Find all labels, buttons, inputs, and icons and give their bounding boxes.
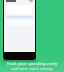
staticText: and save more money [0,66,64,71]
staticText: Track your spending easily [0,61,64,66]
button[interactable]: Profile [29,0,33,2]
